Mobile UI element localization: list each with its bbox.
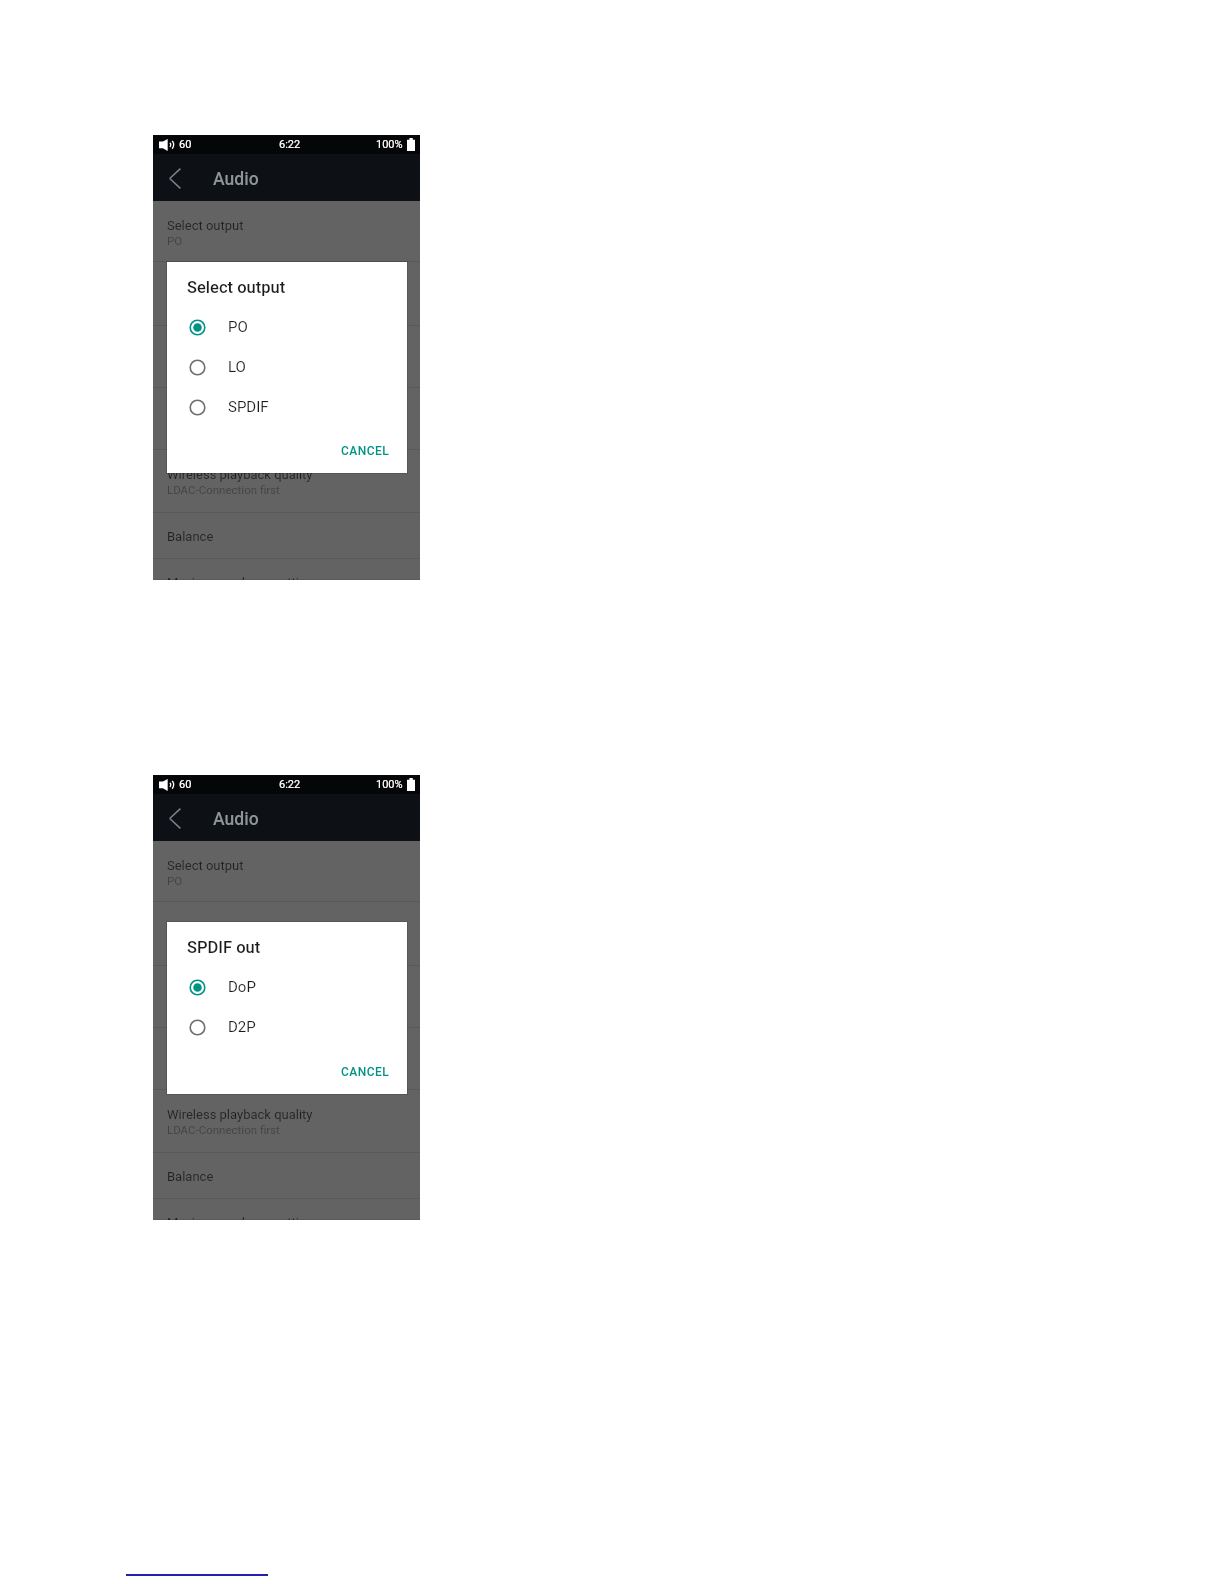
button[interactable]: Wireless playback quality xyxy=(153,1090,420,1153)
button[interactable]: CANCEL xyxy=(336,440,395,462)
button[interactable]: Maximum volume setting xyxy=(153,1199,420,1220)
staticText: Balance xyxy=(167,529,214,544)
staticText: 60 xyxy=(179,778,192,791)
button[interactable]: Back xyxy=(158,798,192,838)
staticText: 60 xyxy=(179,138,192,151)
button[interactable]: Digital filter xyxy=(153,326,420,388)
staticText: 6:22 xyxy=(279,138,301,151)
staticText: SPDIF out xyxy=(187,938,261,957)
staticText: Balance xyxy=(167,1169,214,1184)
button[interactable]: Balance xyxy=(153,513,420,559)
button[interactable]: Select output xyxy=(153,201,420,262)
staticText: DoP xyxy=(228,978,256,996)
staticText: PO xyxy=(167,874,183,887)
staticText: Digital filter xyxy=(167,983,233,998)
button[interactable]: Maximum volume setting xyxy=(153,559,420,580)
button[interactable]: Balance xyxy=(153,1153,420,1199)
staticText: Low xyxy=(167,935,189,948)
staticText: LDAC-Connection first xyxy=(167,1123,280,1136)
staticText: Select output xyxy=(187,278,286,297)
button[interactable]: D2P xyxy=(167,1007,407,1047)
staticText: PO xyxy=(228,318,248,336)
button[interactable]: Digital filter xyxy=(153,966,420,1028)
button[interactable]: SPDIF xyxy=(167,387,407,427)
button[interactable]: Select output xyxy=(153,841,420,902)
staticText: Audio xyxy=(213,809,259,829)
staticText: SPDIF xyxy=(228,398,269,416)
staticText: PO xyxy=(167,234,183,247)
button[interactable]: PO xyxy=(167,307,407,347)
staticText: Wireless playback quality xyxy=(167,1107,313,1122)
staticText: Select output xyxy=(167,218,244,233)
button[interactable]: Back xyxy=(158,158,192,198)
button[interactable]: SPDIF out xyxy=(153,388,420,450)
button[interactable]: Wireless playback quality xyxy=(153,450,420,513)
button[interactable]: DoP xyxy=(167,967,407,1007)
button[interactable]: Gain xyxy=(153,262,420,326)
staticText: SPDIF out xyxy=(167,405,225,420)
staticText: Maximum volume setting xyxy=(167,1215,314,1220)
staticText: D2P xyxy=(228,1018,256,1036)
staticText: Sharp roll-off xyxy=(167,359,234,372)
button[interactable]: Gain xyxy=(153,902,420,966)
button[interactable]: CANCEL xyxy=(336,1061,395,1083)
staticText: 100% xyxy=(376,138,403,151)
staticText: Maximum volume setting xyxy=(167,575,314,580)
staticText: CANCEL xyxy=(341,444,390,458)
staticText: Gain xyxy=(167,279,194,294)
staticText: LO xyxy=(228,358,246,376)
button[interactable]: LO xyxy=(167,347,407,387)
staticText: 6:22 xyxy=(279,778,301,791)
staticText: CANCEL xyxy=(341,1065,390,1079)
staticText: LDAC-Connection first xyxy=(167,483,280,496)
staticText: Wireless playback quality xyxy=(167,467,313,482)
staticText: 100% xyxy=(376,778,403,791)
button[interactable]: SPDIF out xyxy=(153,1028,420,1090)
staticText: Gain xyxy=(167,919,194,934)
staticText: Select output xyxy=(167,858,244,873)
staticText: Audio xyxy=(213,169,259,189)
